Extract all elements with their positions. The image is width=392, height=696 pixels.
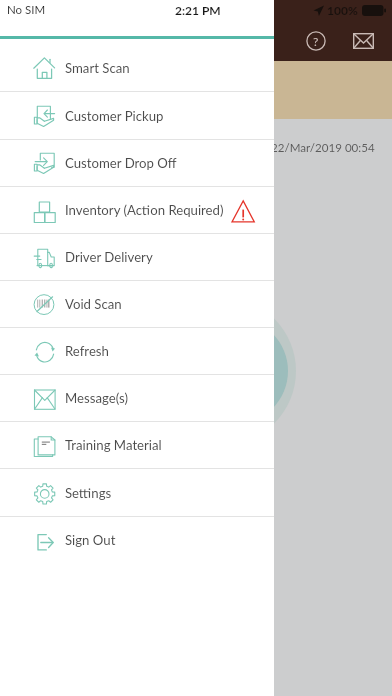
staticText: No SIM [7, 3, 46, 17]
staticText: Inventory (Action Required) [65, 202, 224, 218]
button[interactable]: Messages [343, 21, 383, 61]
staticText: Void Scan [65, 296, 122, 312]
button[interactable]: Customer Drop Off [0, 140, 274, 186]
button[interactable]: Help [296, 21, 336, 61]
button[interactable]: Sign Out [0, 517, 274, 563]
button[interactable]: Inventory (Action Required) [0, 187, 274, 233]
staticText: Driver Delivery [65, 249, 153, 265]
staticText: ? [313, 34, 319, 48]
staticText: Training Material [65, 437, 162, 453]
button[interactable]: Settings [0, 469, 274, 516]
button[interactable]: Message(s) [0, 375, 274, 421]
staticText: Message(s) [65, 390, 128, 406]
staticText: Sign Out [65, 532, 116, 548]
staticText: Smart Scan [65, 60, 130, 76]
staticText: 2:21 PM [175, 3, 221, 17]
button[interactable]: Smart Scan [0, 45, 274, 91]
staticText: Customer Drop Off [65, 155, 177, 171]
staticText: Refresh [65, 343, 109, 359]
button[interactable]: Training Material [0, 422, 274, 468]
button[interactable]: Refresh [0, 328, 274, 374]
staticText: Settings [65, 485, 112, 501]
button[interactable]: Driver Delivery [0, 234, 274, 280]
staticText: 100% [327, 3, 358, 17]
button[interactable]: Void Scan [0, 281, 274, 327]
staticText: 22/Mar/2019 00:54 [271, 141, 375, 155]
staticText: Customer Pickup [65, 108, 164, 124]
button[interactable]: Customer Pickup [0, 92, 274, 139]
